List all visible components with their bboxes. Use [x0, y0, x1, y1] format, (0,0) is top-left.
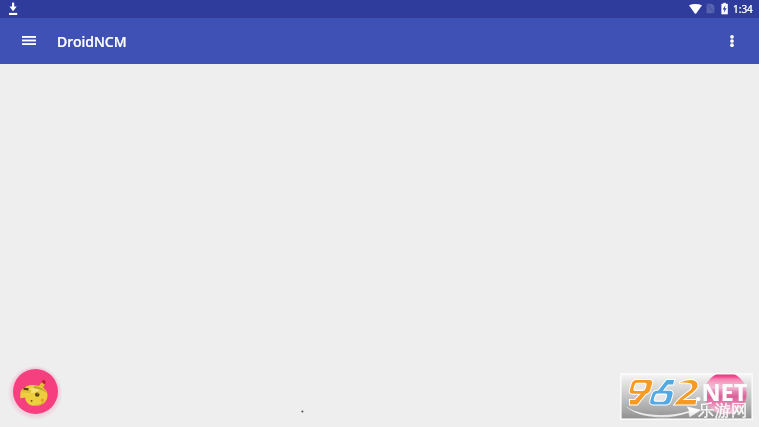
button[interactable]: Open navigation drawer — [14, 26, 44, 56]
staticText: .NET — [695, 376, 748, 407]
staticText: DroidNCM — [57, 32, 127, 51]
button[interactable]: More options — [717, 26, 747, 56]
button[interactable]: Open profile — [13, 369, 58, 414]
staticText: 1:34 — [733, 2, 753, 16]
staticText: 乐游网 — [698, 400, 748, 421]
